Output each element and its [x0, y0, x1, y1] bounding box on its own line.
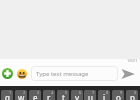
button[interactable]: i	[98, 90, 110, 100]
staticText: 6	[79, 90, 82, 95]
button[interactable]: e	[29, 90, 41, 100]
button[interactable]: Emoji	[17, 69, 27, 79]
staticText: 0	[134, 90, 137, 95]
staticText: o	[116, 92, 121, 100]
button[interactable]: Send	[121, 69, 135, 79]
button[interactable]: Add attachment	[2, 68, 13, 79]
staticText: 9	[120, 90, 123, 95]
staticText: r	[47, 92, 51, 100]
button[interactable]: t	[57, 90, 69, 100]
staticText: 5	[65, 90, 68, 95]
staticText: 2	[23, 90, 26, 95]
staticText: 1	[9, 90, 12, 95]
staticText: w	[18, 92, 25, 100]
staticText: 7	[92, 90, 95, 95]
staticText: q	[5, 92, 10, 100]
staticText: Type text message	[36, 70, 89, 78]
staticText: t	[62, 92, 65, 100]
staticText: 3	[37, 90, 40, 95]
staticText: u	[88, 92, 93, 100]
button[interactable]: q	[1, 90, 13, 100]
button[interactable]: o	[112, 90, 124, 100]
button[interactable]: Type text message	[31, 66, 118, 81]
staticText: 8	[106, 90, 109, 95]
button[interactable]: y	[71, 90, 83, 100]
staticText: y	[75, 92, 80, 100]
button[interactable]: p	[126, 90, 138, 100]
button[interactable]: u	[84, 90, 96, 100]
staticText: 4	[51, 90, 54, 95]
button[interactable]: r	[43, 90, 55, 100]
staticText: e	[33, 92, 38, 100]
button[interactable]: w	[15, 90, 27, 100]
staticText: i	[103, 92, 106, 100]
staticText: p	[130, 92, 135, 100]
staticText: 160/1	[127, 58, 138, 63]
